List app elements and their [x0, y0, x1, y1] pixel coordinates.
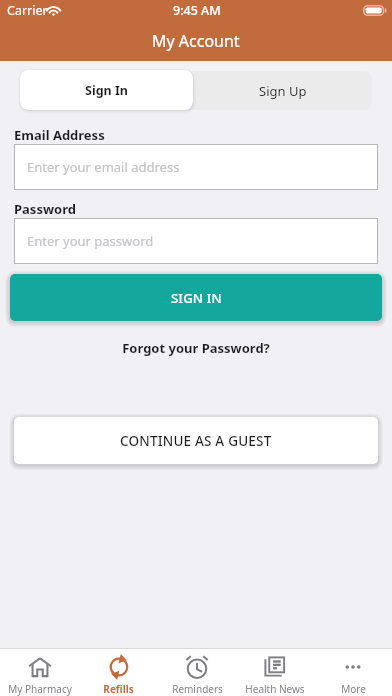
staticText: Password	[14, 200, 76, 218]
button[interactable]: CONTINUE AS A GUEST	[14, 417, 378, 464]
staticText: More	[341, 682, 366, 696]
button[interactable]: My Pharmacy	[0, 649, 79, 696]
button[interactable]: Health News	[236, 649, 314, 696]
staticText: Email Address	[14, 126, 105, 144]
button[interactable]: Reminders	[158, 649, 236, 696]
staticText: Refills	[103, 682, 134, 696]
staticText: 9:45 AM	[173, 2, 221, 19]
staticText: Sign Up	[259, 82, 307, 100]
staticText: SIGN IN	[171, 289, 222, 307]
button[interactable]: Sign In	[20, 70, 193, 110]
button[interactable]: SIGN IN	[10, 274, 382, 321]
button[interactable]: More	[314, 649, 392, 696]
button[interactable]: Refills	[79, 649, 158, 696]
staticText: Enter your password	[27, 232, 154, 250]
button[interactable]: Sign Up	[193, 71, 372, 110]
staticText: Health News	[245, 682, 305, 696]
button[interactable]: Forgot your Password?	[0, 337, 392, 359]
button[interactable]: Enter your email address	[14, 144, 378, 190]
staticText: Carrier	[7, 2, 48, 19]
staticText: Sign In	[85, 82, 128, 99]
staticText: My Account	[152, 30, 240, 52]
staticText: Reminders	[172, 682, 223, 696]
staticText: CONTINUE AS A GUEST	[120, 432, 272, 450]
staticText: Enter your email address	[27, 158, 180, 176]
button[interactable]: Enter your password	[14, 218, 378, 264]
staticText: My Pharmacy	[8, 682, 72, 696]
